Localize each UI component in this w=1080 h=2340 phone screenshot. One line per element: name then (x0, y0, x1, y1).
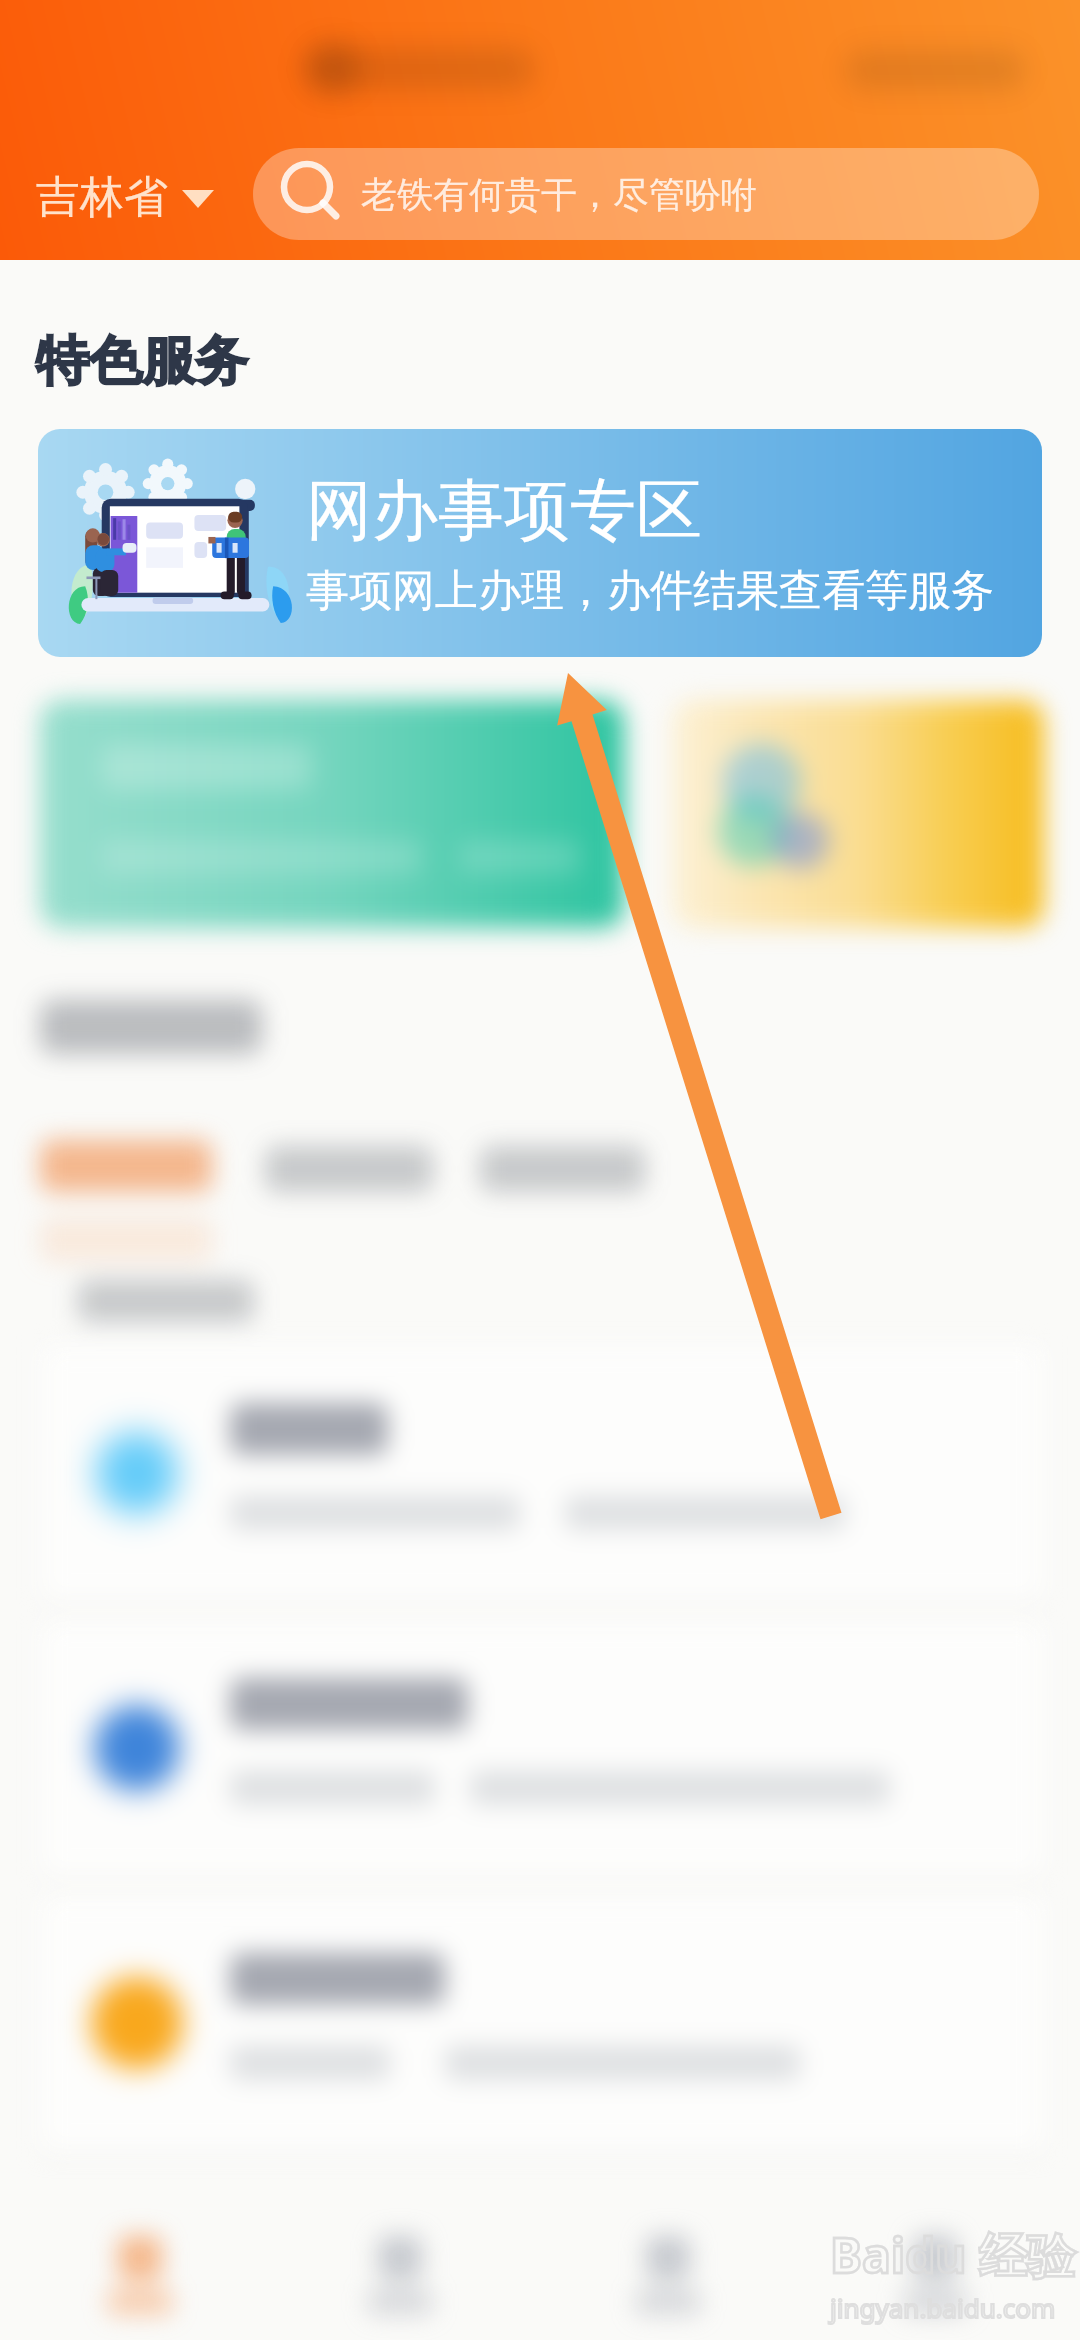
button[interactable]: Tab (578, 2228, 758, 2340)
button[interactable]: Home tab (50, 2228, 230, 2340)
staticText: Baidu 经验 (830, 2222, 1076, 2288)
button[interactable]: Tab 2 (265, 1146, 433, 1192)
staticText: 吉林省 (36, 170, 168, 225)
button[interactable]: Service item (0, 1341, 1080, 1605)
button[interactable]: 办事指南专区 (672, 700, 1044, 928)
staticText: 特色服务 (36, 328, 248, 395)
button[interactable]: Service item (0, 1616, 1080, 1880)
button[interactable]: Tab (845, 2228, 1025, 2340)
button[interactable]: Tab (310, 2228, 490, 2340)
button[interactable]: Service item (0, 1891, 1080, 2155)
button[interactable]: 搜索 (253, 148, 1039, 240)
button[interactable]: 便民服务专区 (40, 700, 624, 928)
button[interactable]: 选择地区 吉林省 (30, 166, 222, 229)
button[interactable]: 网办事项专区 (38, 429, 1042, 657)
staticText: 老铁有何贵干，尽管吩咐 (361, 172, 757, 217)
button[interactable]: Tab 1, selected (40, 1140, 212, 1192)
staticText: 事项网上办理，办件结果查看等服务 (306, 564, 994, 618)
staticText: 网办事项专区 (306, 469, 702, 552)
button[interactable]: Tab 3 (480, 1146, 645, 1192)
staticText: jingyan.baidu.com (830, 2290, 1056, 2325)
